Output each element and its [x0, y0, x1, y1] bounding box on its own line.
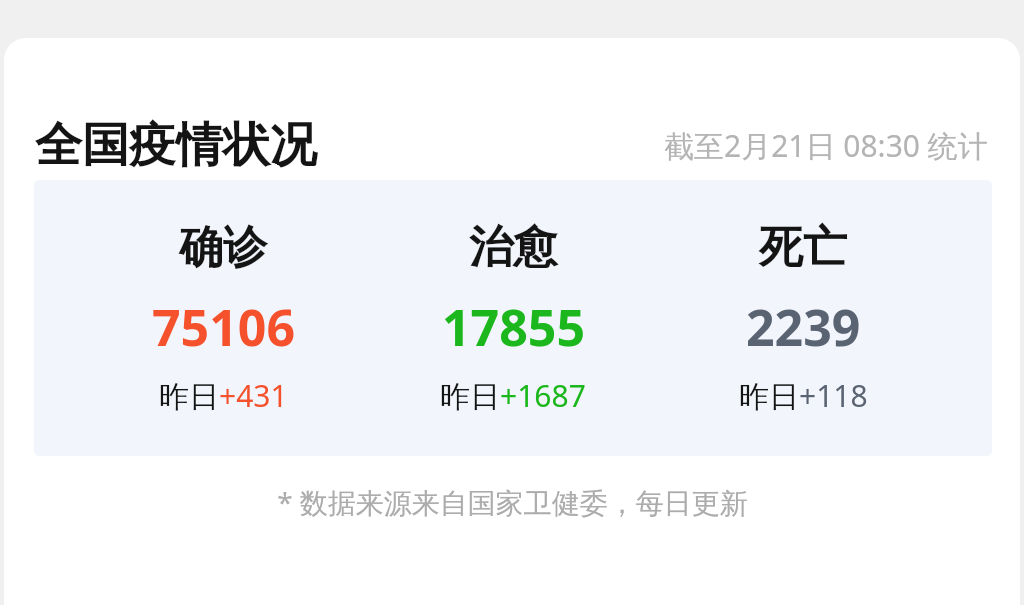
button[interactable]: 治愈	[368, 180, 658, 456]
staticText: 75106	[152, 293, 295, 361]
staticText: * 数据来源来自国家卫健委，每日更新	[277, 483, 748, 521]
staticText: 2239	[746, 293, 861, 361]
staticText: 17855	[442, 293, 585, 361]
button[interactable]: 确诊	[34, 180, 992, 456]
staticText: 昨日+1687	[440, 375, 586, 416]
staticText: 截至2月21日 08:30 统计	[664, 125, 988, 166]
staticText: 确诊	[179, 220, 267, 275]
button[interactable]: 确诊	[78, 180, 368, 456]
staticText: 全国疫情状况	[35, 116, 317, 175]
button[interactable]: 死亡	[658, 180, 948, 456]
staticText: 昨日+118	[739, 375, 868, 416]
staticText: 治愈	[469, 220, 557, 275]
staticText: 死亡	[759, 220, 847, 275]
button[interactable]: 全国疫情状况	[4, 38, 1020, 605]
staticText: 昨日+431	[159, 375, 288, 416]
